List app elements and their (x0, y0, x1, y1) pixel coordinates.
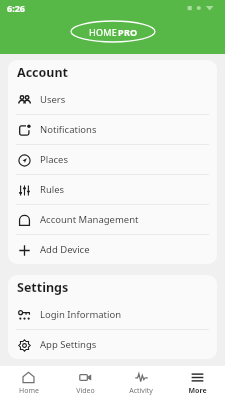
staticText: Account (17, 64, 69, 81)
staticText: Activity (129, 386, 153, 396)
button[interactable]: Rules (8, 175, 217, 204)
staticText: Add Device (40, 243, 90, 256)
staticText: Account Management (40, 213, 139, 226)
button[interactable]: Video (57, 366, 113, 400)
button[interactable]: Notifications (8, 115, 217, 144)
staticText: PRO (118, 26, 138, 38)
staticText: HOME (89, 26, 118, 38)
other: More (191, 371, 204, 384)
staticText: Notifications (40, 123, 97, 136)
staticText: Home (19, 386, 39, 396)
other: Activity (135, 371, 148, 384)
other: Home (22, 371, 35, 384)
staticText: Video (76, 386, 95, 396)
button[interactable]: Users (8, 85, 217, 114)
button[interactable]: Account Management (8, 205, 217, 234)
button[interactable]: HomePro logo (71, 21, 155, 42)
button[interactable]: Places (8, 145, 217, 174)
staticText: More (188, 386, 207, 396)
other: Video (79, 371, 92, 384)
button[interactable]: Add Device (8, 235, 217, 264)
staticText: Rules (40, 183, 65, 196)
button[interactable]: More (169, 366, 225, 400)
staticText: Users (40, 93, 66, 106)
button[interactable]: Home (0, 366, 57, 400)
staticText: Settings (17, 279, 69, 296)
button[interactable]: Login Information (8, 300, 217, 329)
staticText: Places (40, 153, 68, 166)
staticText: App Settings (40, 338, 97, 351)
button[interactable]: App Settings (8, 330, 217, 359)
staticText: 6:26 (7, 2, 25, 14)
staticText: Login Information (40, 308, 122, 321)
button[interactable]: Activity (113, 366, 169, 400)
